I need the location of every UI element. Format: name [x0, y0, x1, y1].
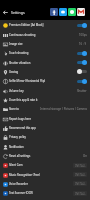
- staticText: Text Scanner (OCR): [9, 191, 33, 195]
- button[interactable]: Voice Recorder: [0, 179, 90, 188]
- staticText: 100ps: [79, 33, 87, 37]
- button[interactable]: Reset all settings: [0, 151, 90, 160]
- button[interactable]: On: [77, 60, 87, 65]
- button[interactable]: INSTALL: [73, 172, 87, 177]
- staticText: Geotag: [9, 70, 19, 74]
- button[interactable]: On: [77, 23, 87, 28]
- button[interactable]: INSTALL: [73, 191, 87, 196]
- staticText: Touch shooting: [9, 51, 29, 55]
- staticText: Silent Cam: [9, 163, 23, 167]
- button[interactable]: Touch shooting: [0, 48, 90, 58]
- staticText: Notification: [9, 145, 24, 149]
- staticText: Reset all settings: [9, 154, 31, 158]
- button[interactable]: On: [77, 79, 87, 84]
- button[interactable]: Selfie Mirror (Horizontal Flip): [0, 76, 90, 86]
- staticText: Music Recognition (Free): [9, 173, 40, 177]
- staticText: Volume key: [9, 89, 24, 93]
- staticText: INSTALL: [75, 164, 86, 168]
- button[interactable]: I love this app & rate it: [0, 95, 90, 104]
- staticText: Internal storage / Pictures / Camera: [40, 107, 87, 111]
- staticText: INSTALL: [75, 192, 86, 196]
- button[interactable]: Image size: [0, 39, 90, 48]
- staticText: 16 : 9: [79, 42, 87, 46]
- button[interactable]: Back: [0, 4, 11, 20]
- staticText: Image size: [9, 42, 23, 46]
- staticText: Continuous shooting: [9, 33, 36, 37]
- staticText: INSTALL: [75, 173, 86, 177]
- staticText: Settings: [11, 10, 25, 15]
- button[interactable]: Music Recognition (Free): [0, 170, 90, 179]
- button[interactable]: Report bugs here: [0, 114, 90, 123]
- staticText: Selfie Mirror (Horizontal Flip): [9, 79, 46, 83]
- staticText: Recommend this app: [9, 126, 36, 130]
- button[interactable]: Notification: [0, 142, 90, 151]
- button[interactable]: Off: [77, 69, 87, 74]
- button[interactable]: Continuous shooting: [0, 30, 90, 39]
- staticText: On: [83, 154, 87, 158]
- button[interactable]: Text Scanner (OCR): [0, 188, 90, 198]
- button[interactable]: Recommend this app: [0, 123, 90, 132]
- staticText: I love this app & rate it: [9, 98, 38, 102]
- button[interactable]: Shutter vibration: [0, 58, 90, 67]
- staticText: INSTALL: [75, 182, 86, 186]
- button[interactable]: INSTALL: [73, 163, 87, 168]
- button[interactable]: Silent Cam: [0, 160, 90, 170]
- button[interactable]: Privacy policy: [0, 132, 90, 142]
- button[interactable]: Volume key: [0, 86, 90, 95]
- button[interactable]: Premium Edition [Ad Block]: [0, 20, 90, 30]
- staticText: Shutter vibration: [9, 61, 31, 65]
- staticText: Store to: [9, 107, 19, 111]
- button[interactable]: On: [77, 51, 87, 56]
- staticText: Privacy policy: [9, 135, 26, 139]
- button[interactable]: Store to: [0, 104, 90, 114]
- staticText: Premium Edition [Ad Block]: [9, 23, 44, 27]
- staticText: Voice Recorder: [9, 182, 28, 186]
- button[interactable]: Geotag: [0, 67, 90, 76]
- button[interactable]: INSTALL: [73, 181, 87, 186]
- staticText: Shutter: [77, 89, 87, 93]
- staticText: Report bugs here: [9, 117, 31, 121]
